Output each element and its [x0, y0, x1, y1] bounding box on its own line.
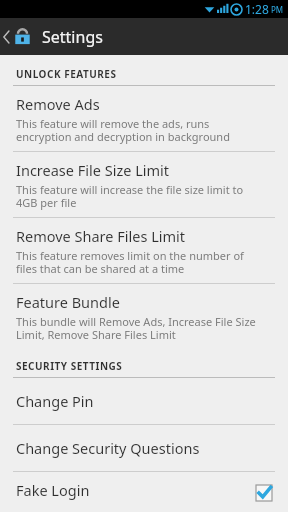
staticText: UNLOCK FEATURES — [16, 67, 117, 81]
other: Fake Login enabled — [256, 485, 272, 501]
button[interactable]: Remove Share Files Limit — [0, 218, 288, 284]
button[interactable]: Change Security Questions — [0, 425, 288, 472]
staticText: This feature will remove the ads, runs e… — [16, 116, 230, 144]
staticText: Settings — [42, 26, 103, 48]
staticText: This feature will increase the file size… — [16, 182, 244, 210]
staticText: SECURITY SETTINGS — [16, 359, 123, 373]
staticText: Remove Ads — [16, 94, 100, 114]
staticText: Increase File Size Limit — [16, 160, 170, 180]
staticText: This feature removes limit on the number… — [16, 248, 244, 276]
button[interactable]: Fake Login — [0, 472, 288, 512]
staticText: Remove Share Files Limit — [16, 226, 186, 246]
staticText: 1:28 — [245, 1, 269, 17]
button[interactable]: Increase File Size Limit — [0, 152, 288, 218]
button[interactable]: Back — [0, 18, 13, 55]
staticText: Change Security Questions — [16, 438, 200, 458]
staticText: Feature Bundle — [16, 292, 120, 312]
staticText: Fake Login — [16, 480, 90, 500]
staticText: This bundle will Remove Ads, Increase Fi… — [16, 314, 256, 342]
button[interactable]: Remove Ads — [0, 86, 288, 152]
button[interactable]: Change Pin — [0, 378, 288, 425]
staticText: Change Pin — [16, 391, 94, 411]
staticText: PM — [271, 4, 284, 15]
button[interactable]: Feature Bundle — [0, 284, 288, 349]
